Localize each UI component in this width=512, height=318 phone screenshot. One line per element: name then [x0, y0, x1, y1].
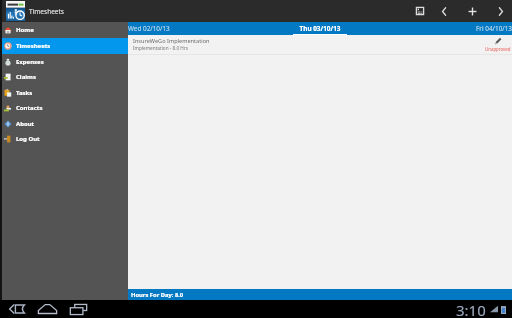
button[interactable]: Claims	[0, 69, 128, 85]
staticText: Wed 02/10/13	[128, 24, 256, 33]
staticText: Hours For Day: 8.0	[131, 291, 184, 299]
button[interactable]: Tasks	[0, 85, 128, 101]
staticText: Fri 04/10/13	[384, 24, 512, 33]
button[interactable]: Back	[6, 300, 28, 318]
staticText: InsureWeGo Implementation	[133, 37, 210, 45]
staticText: Timesheets	[29, 7, 64, 16]
staticText: Claims	[16, 73, 36, 81]
staticText: Implementation - 8.0 Hrs	[133, 45, 189, 51]
staticText: Log Out	[16, 135, 40, 143]
button[interactable]: Fri 04/10/13	[384, 22, 512, 35]
button[interactable]: Home	[0, 22, 128, 38]
button[interactable]: Next day	[491, 2, 509, 20]
button[interactable]: InsureWeGo Implementation	[128, 35, 512, 54]
button[interactable]: Save	[411, 2, 429, 20]
button[interactable]: Log Out	[0, 131, 128, 147]
button[interactable]: Home	[36, 300, 58, 318]
button[interactable]: Thu 03/10/13	[256, 22, 384, 35]
button[interactable]: Timesheets	[0, 38, 128, 54]
staticText: Expenses	[16, 58, 44, 66]
staticText: 3:10	[456, 300, 486, 318]
staticText: Home	[16, 26, 34, 34]
button[interactable]: Wed 02/10/13	[128, 22, 256, 35]
staticText: Timesheets	[16, 42, 51, 50]
button[interactable]: Contacts	[0, 100, 128, 116]
button[interactable]: About	[0, 116, 128, 132]
staticText: Unapproved	[485, 46, 511, 52]
staticText: Tasks	[16, 89, 33, 97]
button[interactable]: Expenses	[0, 54, 128, 70]
staticText: Thu 03/10/13	[256, 24, 384, 33]
button[interactable]: Add entry	[463, 2, 481, 20]
staticText: About	[16, 120, 35, 128]
button[interactable]: Previous day	[435, 2, 453, 20]
button[interactable]: Recent apps	[67, 300, 89, 318]
staticText: Contacts	[16, 104, 43, 112]
